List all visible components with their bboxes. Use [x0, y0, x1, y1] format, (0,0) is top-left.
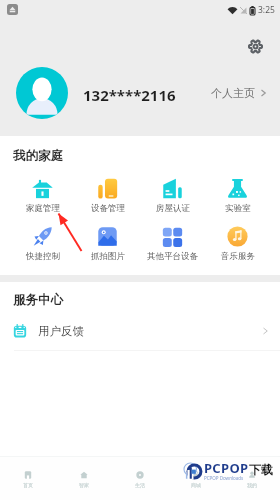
button[interactable]: 个人主页 — [205, 82, 272, 104]
staticText: 其他平台设备 — [147, 251, 198, 262]
button[interactable]: 房屋认证 — [140, 178, 205, 214]
staticText: 商城 — [191, 482, 201, 488]
staticText: 音乐服务 — [221, 251, 255, 262]
button[interactable]: 音乐服务 — [205, 226, 270, 262]
staticText: 我的 — [247, 482, 257, 488]
staticText: 个人主页 — [211, 86, 255, 100]
staticText: 132****2116 — [83, 85, 176, 105]
button[interactable]: 抓拍图片 — [75, 226, 140, 262]
button[interactable]: 生活 — [112, 457, 168, 500]
staticText: 我的家庭 — [13, 148, 63, 164]
staticText: 设备管理 — [91, 203, 125, 214]
button[interactable]: 首页 — [0, 457, 56, 500]
button[interactable]: 智家 — [56, 457, 112, 500]
staticText: 实验室 — [225, 203, 251, 214]
staticText: 生活 — [135, 482, 145, 488]
button[interactable]: Settings — [241, 32, 270, 61]
staticText: 下载 — [249, 462, 273, 477]
button[interactable]: 快捷控制 — [10, 226, 75, 262]
staticText: PCPOP — [204, 459, 249, 477]
staticText: PCPOP Downloads — [204, 475, 244, 481]
staticText: 首页 — [23, 482, 33, 488]
staticText: 快捷控制 — [26, 251, 60, 262]
staticText: 家庭管理 — [26, 203, 60, 214]
staticText: 房屋认证 — [156, 203, 190, 214]
button[interactable]: 我的 — [224, 457, 280, 500]
button[interactable]: 家庭管理 — [10, 178, 75, 214]
staticText: 智家 — [79, 482, 89, 488]
button[interactable]: 商城 — [168, 457, 224, 500]
staticText: 服务中心 — [13, 292, 63, 308]
staticText: 抓拍图片 — [91, 251, 125, 262]
staticText: 3:25 — [258, 4, 275, 16]
button[interactable]: Profile avatar — [16, 67, 68, 119]
button[interactable]: 用户反馈 — [0, 318, 280, 344]
staticText: 用户反馈 — [38, 324, 84, 338]
button[interactable]: 设备管理 — [75, 178, 140, 214]
button[interactable]: 实验室 — [205, 178, 270, 214]
button[interactable]: 其他平台设备 — [140, 226, 205, 262]
